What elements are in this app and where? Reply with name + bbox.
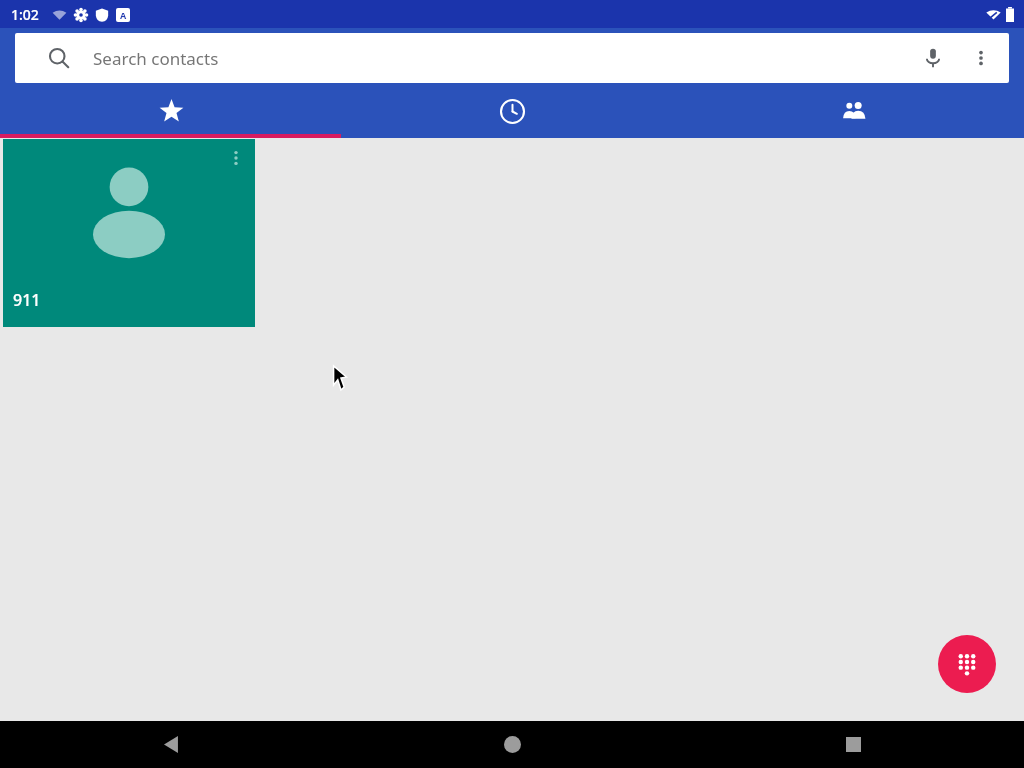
button[interactable]: More options (957, 34, 1005, 82)
staticText: 1:02 (11, 5, 39, 24)
button[interactable]: Home (342, 721, 683, 768)
button[interactable]: Voice search (909, 34, 957, 82)
button[interactable]: Search contacts (15, 33, 1009, 83)
button[interactable]: Back (0, 721, 342, 768)
button[interactable]: Contacts (683, 88, 1024, 134)
staticText: 911 (13, 289, 41, 311)
button[interactable]: Contact options (217, 139, 255, 177)
button[interactable]: Recents (342, 88, 683, 134)
button[interactable]: Favorites (0, 88, 342, 134)
staticText: A (120, 9, 127, 21)
button[interactable]: 911 (3, 139, 255, 327)
button[interactable]: Dialpad (938, 635, 996, 693)
staticText: Search contacts (93, 47, 219, 70)
button[interactable]: Recent apps (683, 721, 1024, 768)
